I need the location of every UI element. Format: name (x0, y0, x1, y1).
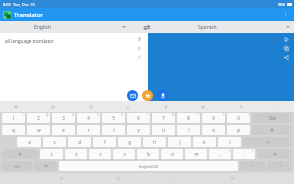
button[interactable]: Ctrl (2, 161, 32, 171)
button[interactable]: n (161, 149, 183, 159)
staticText: 3 (62, 115, 65, 121)
button[interactable]: g (118, 137, 141, 147)
staticText: l (229, 139, 231, 145)
button[interactable]: i (177, 125, 200, 135)
button[interactable]: shift (2, 149, 38, 159)
button[interactable]: shift (257, 149, 292, 159)
staticText: e (62, 127, 65, 133)
button[interactable]: o (202, 125, 225, 135)
button[interactable]: Emoji (199, 103, 207, 111)
button[interactable]: lang (34, 161, 57, 171)
staticText: 5 (112, 115, 115, 121)
button[interactable]: Handwriting (124, 103, 132, 111)
button[interactable]: Swap languages (130, 21, 164, 33)
button[interactable]: 4 (77, 113, 100, 123)
button[interactable]: u (152, 125, 175, 135)
button[interactable]: Home (114, 174, 123, 183)
button[interactable]: f (93, 137, 116, 147)
button[interactable]: k (193, 137, 216, 147)
staticText: o (212, 127, 215, 133)
button[interactable]: z (40, 149, 63, 159)
button[interactable]: Clipboard (87, 103, 95, 111)
button[interactable]: e (52, 125, 75, 135)
button[interactable]: 1 (2, 113, 25, 123)
button[interactable]: bksp (252, 125, 292, 135)
button[interactable]: j (168, 137, 191, 147)
button[interactable]: l (218, 137, 241, 147)
button[interactable]: h (143, 137, 166, 147)
button[interactable]: 6 (127, 113, 150, 123)
button[interactable]: b (137, 149, 159, 159)
button[interactable]: v (113, 149, 135, 159)
button[interactable]: Clear (135, 53, 144, 62)
staticText: c (99, 151, 102, 157)
button[interactable]: Stickers (49, 103, 57, 111)
button[interactable]: , (209, 149, 231, 159)
button[interactable]: a (17, 137, 41, 147)
staticText: j (179, 139, 181, 145)
button[interactable]: m (185, 149, 207, 159)
button[interactable]: r (77, 125, 100, 135)
staticText: 2 (37, 115, 40, 121)
button[interactable]: 7 (152, 113, 175, 123)
button[interactable]: x (65, 149, 87, 159)
staticText: k (203, 139, 206, 145)
button[interactable]: w (27, 125, 50, 135)
button[interactable]: y (127, 125, 150, 135)
staticText: a (28, 139, 31, 145)
staticText: u (162, 127, 165, 133)
button[interactable]: 8 (177, 113, 200, 123)
button[interactable]: Search (237, 103, 245, 111)
staticText: Spanish (198, 24, 217, 31)
button[interactable]: More options (280, 9, 291, 20)
button[interactable]: Camera translate (142, 90, 153, 101)
button[interactable]: English (0, 21, 130, 33)
staticText: i (188, 127, 190, 133)
staticText: * (197, 113, 199, 117)
button[interactable]: 3 (52, 113, 75, 123)
button[interactable]: Copy (282, 44, 291, 53)
staticText: s (53, 139, 56, 145)
staticText: n (171, 151, 174, 157)
button[interactable]: Settings (12, 103, 20, 111)
button[interactable]: Voice typing (162, 103, 170, 111)
button[interactable]: t (102, 125, 125, 135)
staticText: ? (252, 149, 254, 153)
staticText: x (75, 151, 78, 157)
button[interactable]: d (68, 137, 91, 147)
button[interactable]: Hide keyboard (228, 174, 237, 183)
button[interactable]: Recents (57, 174, 66, 183)
staticText: d (78, 139, 81, 145)
button[interactable]: 2 (27, 113, 50, 123)
staticText: 4 (87, 115, 90, 121)
staticText: y (137, 127, 140, 133)
button[interactable]: Voice input (135, 35, 144, 44)
button[interactable]: Share (282, 53, 291, 62)
button[interactable]: q (2, 125, 25, 135)
button[interactable]: p (227, 125, 250, 135)
button[interactable]: 0 (227, 113, 250, 123)
button[interactable]: s (43, 137, 66, 147)
button[interactable]: Spanish (164, 21, 294, 33)
button[interactable]: Play translation (282, 35, 291, 44)
button[interactable]: c (89, 149, 111, 159)
staticText: ) (248, 113, 249, 117)
button[interactable]: 9 (202, 113, 225, 123)
staticText: Ctrl (14, 164, 20, 169)
button[interactable]: 5 (102, 113, 125, 123)
staticText: ^ (147, 113, 149, 117)
button[interactable]: Translate (127, 90, 138, 101)
staticText: all language translator (5, 38, 54, 44)
button[interactable]: . (233, 149, 255, 159)
button[interactable]: Microphone (157, 90, 168, 101)
button[interactable]: Del (252, 113, 292, 123)
button[interactable]: English(US) (59, 161, 238, 171)
staticText: 8:01 (3, 2, 11, 7)
staticText: 7 (162, 115, 165, 121)
button[interactable]: Play (135, 44, 144, 53)
